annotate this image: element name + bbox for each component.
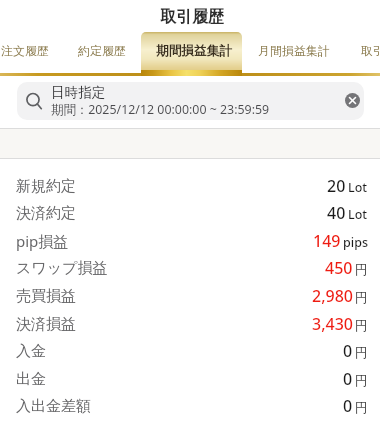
staticText: 3,430: [312, 313, 353, 335]
staticText: 新規約定: [16, 177, 76, 196]
staticText: 決済約定: [16, 204, 76, 223]
staticText: 円: [355, 262, 368, 278]
staticText: 円: [355, 290, 368, 306]
button[interactable]: 注文履歴: [1, 43, 49, 58]
staticText: 入金: [16, 342, 46, 361]
button[interactable]: 決済約定: [0, 201, 380, 225]
staticText: 円: [355, 373, 368, 389]
staticText: pip損益: [16, 231, 69, 251]
staticText: 入出金差額: [16, 397, 91, 416]
button[interactable]: 期間損益集計: [141, 32, 242, 76]
staticText: 450: [325, 257, 353, 279]
staticText: Lot: [348, 206, 368, 223]
staticText: 日時指定: [51, 84, 106, 101]
button[interactable]: スワップ損益: [0, 256, 380, 280]
staticText: 0: [343, 395, 353, 417]
button[interactable]: 売買損益: [0, 284, 380, 308]
button[interactable]: 取引: [361, 43, 380, 58]
staticText: 0: [343, 340, 353, 362]
staticText: スワップ損益: [16, 259, 108, 278]
staticText: Lot: [348, 179, 368, 196]
button[interactable]: 出金: [0, 367, 380, 391]
staticText: 2,980: [312, 285, 353, 307]
staticText: 149: [313, 230, 341, 252]
button[interactable]: 入出金差額: [0, 394, 380, 418]
staticText: 円: [355, 400, 368, 416]
button[interactable]: 約定履歴: [78, 43, 126, 58]
button[interactable]: 新規約定: [0, 174, 380, 198]
staticText: 40: [327, 202, 346, 224]
staticText: 0: [343, 368, 353, 390]
button[interactable]: 日時指定: [17, 82, 364, 120]
button[interactable]: pip損益: [0, 229, 380, 253]
staticText: 期間：2025/12/12 00:00:00 ~ 23:59:59: [51, 101, 270, 118]
button[interactable]: 決済損益: [0, 312, 380, 336]
staticText: 決済損益: [16, 315, 76, 334]
button[interactable]: Clear: [345, 93, 360, 108]
staticText: pips: [343, 234, 368, 251]
staticText: 取引履歴: [160, 7, 224, 27]
staticText: 円: [355, 318, 368, 334]
staticText: 出金: [16, 370, 46, 389]
staticText: 売買損益: [16, 287, 76, 306]
staticText: 20: [327, 175, 346, 197]
staticText: 円: [355, 345, 368, 361]
button[interactable]: 月間損益集計: [258, 43, 330, 58]
staticText: 期間損益集計: [156, 43, 233, 59]
button[interactable]: 入金: [0, 339, 380, 363]
